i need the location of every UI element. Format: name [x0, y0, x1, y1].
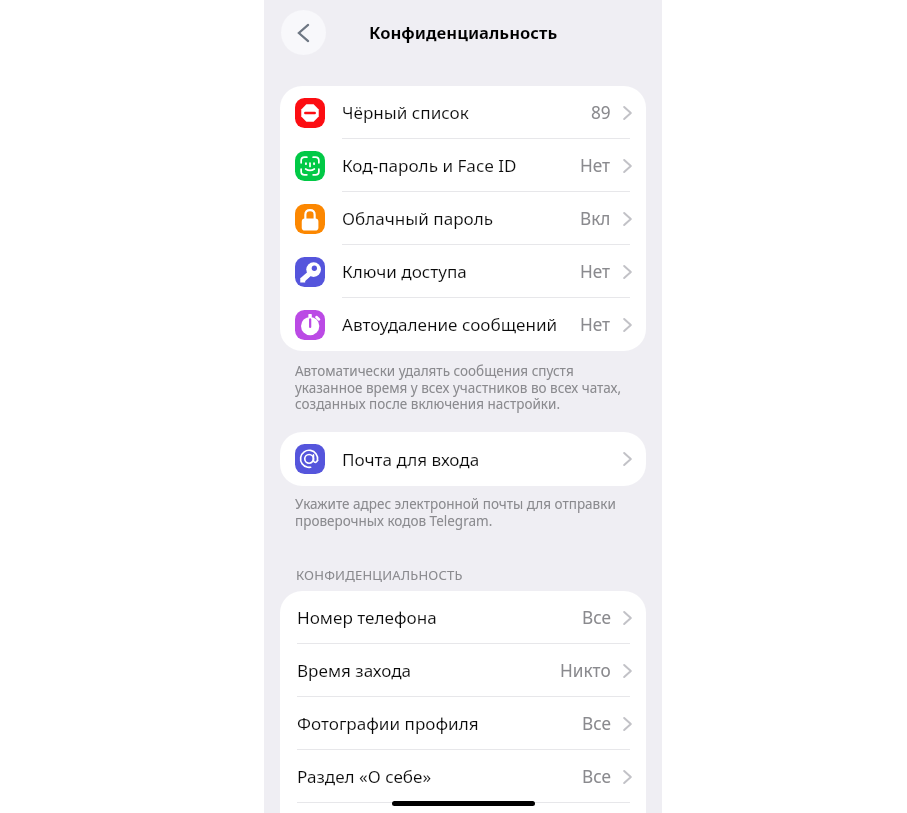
- staticText: Время захода: [297, 659, 412, 682]
- button[interactable]: Ключи доступа: [280, 245, 646, 298]
- staticText: 89: [591, 101, 611, 124]
- button[interactable]: Время захода: [280, 644, 646, 697]
- staticText: Почта для входа: [342, 448, 480, 471]
- staticText: Укажите адрес электронной почты для отпр…: [295, 495, 616, 530]
- staticText: Все: [582, 606, 611, 629]
- button[interactable]: Автоудаление сообщений: [280, 298, 646, 351]
- button[interactable]: Код-пароль и Face ID: [280, 139, 646, 192]
- staticText: Номер телефона: [297, 606, 437, 629]
- staticText: Нет: [580, 313, 611, 336]
- staticText: Все: [582, 765, 611, 788]
- staticText: Облачный пароль: [342, 207, 494, 230]
- staticText: Все: [582, 712, 611, 735]
- staticText: Нет: [580, 154, 611, 177]
- staticText: КОНФИДЕНЦИАЛЬНОСТЬ: [296, 566, 463, 584]
- button[interactable]: Почта для входа: [280, 432, 646, 486]
- button[interactable]: Облачный пароль: [280, 192, 646, 245]
- staticText: Нет: [580, 260, 611, 283]
- staticText: Автоматически удалять сообщения спустя у…: [295, 362, 622, 413]
- staticText: Код-пароль и Face ID: [342, 154, 517, 177]
- staticText: Ключи доступа: [342, 260, 467, 283]
- button[interactable]: Back: [281, 10, 326, 55]
- staticText: Вкл: [580, 207, 611, 230]
- staticText: Автоудаление сообщений: [342, 313, 558, 336]
- button[interactable]: Чёрный список: [280, 86, 646, 139]
- button[interactable]: Фотографии профиля: [280, 697, 646, 750]
- staticText: Раздел «О себе»: [297, 765, 432, 788]
- staticText: Чёрный список: [342, 101, 469, 124]
- button[interactable]: Раздел «О себе»: [280, 750, 646, 803]
- staticText: Фотографии профиля: [297, 712, 479, 735]
- staticText: Никто: [560, 659, 611, 682]
- button[interactable]: Номер телефона: [280, 591, 646, 644]
- staticText: Конфиденциальность: [369, 21, 558, 44]
